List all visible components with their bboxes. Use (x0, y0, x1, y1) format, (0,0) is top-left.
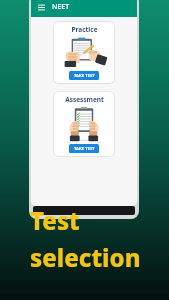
button[interactable]: Open navigation menu (36, 2, 46, 12)
staticText: selection (30, 241, 141, 274)
staticText: NEET (52, 2, 70, 12)
staticText: TAKE TEST (74, 146, 95, 152)
button[interactable]: TAKE TEST (69, 71, 99, 80)
button[interactable]: Assessment (53, 91, 115, 157)
staticText: Test (30, 204, 80, 237)
button[interactable]: TAKE TEST (69, 144, 99, 153)
staticText: Practice (71, 25, 98, 34)
staticText: Assessment (65, 95, 104, 104)
button[interactable]: Practice (53, 21, 115, 84)
staticText: TAKE TEST (74, 73, 95, 79)
